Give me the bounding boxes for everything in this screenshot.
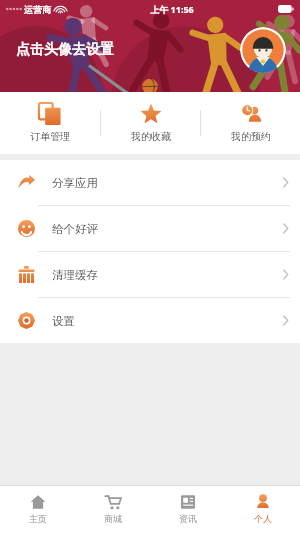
button[interactable]: 商城 xyxy=(75,485,150,533)
staticText: 商城 xyxy=(104,513,122,524)
staticText: 我的预约 xyxy=(231,130,271,143)
button[interactable]: 订单管理 xyxy=(0,92,100,154)
staticText: 订单管理 xyxy=(30,130,70,143)
button[interactable]: Profile avatar, tap to set up xyxy=(240,27,286,73)
button[interactable]: 清理缓存 xyxy=(0,252,300,297)
button[interactable]: 个人 xyxy=(225,485,300,533)
staticText: 点击头像去设置 xyxy=(16,41,114,59)
button[interactable]: 资讯 xyxy=(150,485,225,533)
staticText: 资讯 xyxy=(179,513,197,524)
staticText: 运营商 xyxy=(24,4,51,15)
button[interactable]: 我的预约 xyxy=(201,92,300,154)
staticText: 给个好评 xyxy=(52,222,98,236)
button[interactable]: 设置 xyxy=(0,298,300,343)
button[interactable]: 主页 xyxy=(0,485,75,533)
staticText: 上午 11:56 xyxy=(150,3,194,15)
staticText: 主页 xyxy=(29,513,47,524)
button[interactable]: 分享应用 xyxy=(0,160,300,205)
staticText: 我的收藏 xyxy=(131,130,171,143)
staticText: 设置 xyxy=(52,314,75,328)
button[interactable]: 给个好评 xyxy=(0,206,300,251)
button[interactable]: 我的收藏 xyxy=(101,92,200,154)
staticText: 清理缓存 xyxy=(52,268,98,282)
staticText: 个人 xyxy=(254,513,272,524)
staticText: 分享应用 xyxy=(52,176,98,190)
